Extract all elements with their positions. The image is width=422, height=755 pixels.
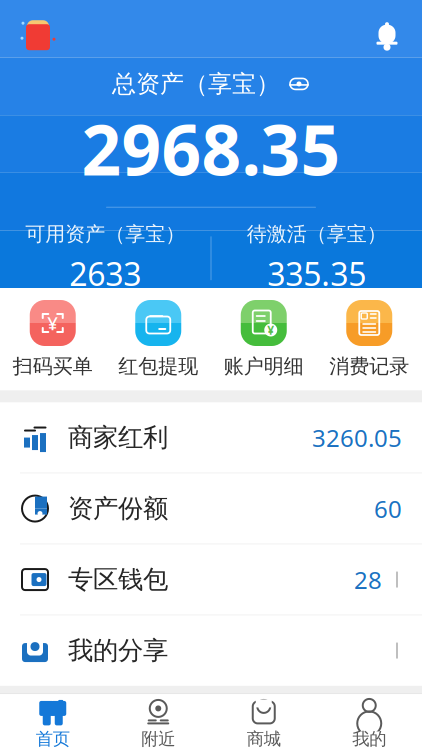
staticText: 3260.05 [312, 422, 402, 453]
staticText: 28 [354, 564, 382, 595]
staticText: 我的 [352, 728, 386, 750]
staticText: ¥ [47, 311, 58, 335]
staticText: 335.35 [267, 252, 366, 295]
staticText: 2968.35 [81, 103, 340, 195]
button[interactable]: ¥ [211, 300, 316, 379]
button[interactable]: 首页 [0, 694, 105, 754]
button[interactable]: 专区钱包 [0, 545, 422, 615]
staticText: 商家红利 [68, 422, 168, 453]
button[interactable]: 总资产（享宝） [112, 69, 310, 99]
staticText: 红包提现 [118, 354, 198, 379]
button[interactable]: 我的分享 [0, 616, 422, 686]
staticText: ¥ [267, 322, 274, 338]
staticText: 可用资产（享宝） [25, 222, 185, 246]
staticText: 我的分享 [68, 635, 168, 666]
staticText: 附近 [141, 728, 175, 750]
button[interactable]: 商城 [211, 694, 316, 754]
button[interactable]: ¥ [0, 300, 105, 379]
button[interactable]: 附近 [105, 694, 211, 754]
staticText: 消费记录 [329, 354, 409, 379]
button[interactable]: Rewards [18, 15, 58, 55]
staticText: 扫码买单 [13, 354, 93, 379]
button[interactable]: 我的 [316, 694, 422, 754]
staticText: 待激活（享宝） [247, 222, 387, 246]
staticText: 专区钱包 [68, 564, 168, 595]
button[interactable]: 消费记录 [316, 300, 422, 379]
staticText: 60 [374, 493, 402, 524]
staticText: 总资产（享宝） [112, 69, 280, 99]
button[interactable]: 资产份额 [0, 474, 422, 544]
button[interactable]: Notifications [370, 18, 404, 52]
staticText: 首页 [36, 728, 70, 750]
staticText: 资产份额 [68, 493, 168, 524]
staticText: 商城 [247, 728, 281, 750]
button[interactable]: 商家红利 [0, 403, 422, 473]
button[interactable]: 红包提现 [105, 300, 211, 379]
staticText: 2633 [69, 252, 141, 295]
staticText: 账户明细 [224, 354, 304, 379]
